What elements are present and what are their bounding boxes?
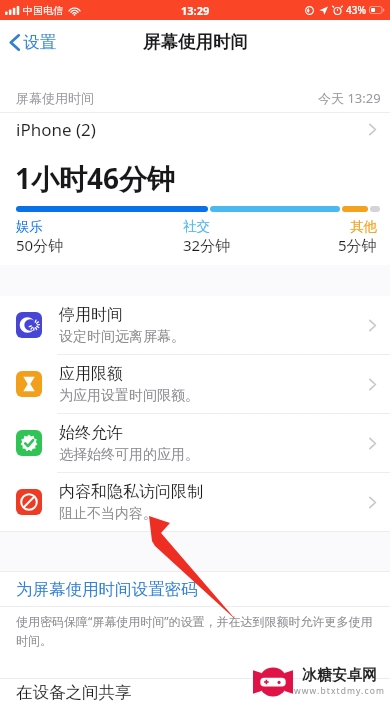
staticText: 内容和隐私访问限制 — [59, 482, 203, 502]
button[interactable]: iPhone (2) — [0, 113, 390, 146]
button[interactable]: 始终允许 — [0, 414, 390, 472]
staticText: 使用密码保障“屏幕使用时间”的设置，并在达到限额时允许更多使用时间。 — [16, 613, 378, 649]
staticText: 设定时间远离屏幕。 — [59, 328, 185, 346]
staticText: 32分钟 — [183, 235, 231, 255]
staticText: 停用时间 — [59, 305, 123, 325]
staticText: 始终允许 — [59, 423, 123, 443]
button[interactable]: 内容和隐私访问限制 — [0, 473, 390, 531]
button[interactable]: 设置 — [0, 24, 68, 61]
staticText: 今天 13:29 — [318, 89, 381, 107]
staticText: 应用限额 — [59, 364, 123, 384]
staticText: 屏幕使用时间 — [143, 31, 248, 53]
staticText: 在设备之间共享 — [16, 682, 132, 703]
staticText: www.btxtdmy.com — [294, 685, 385, 697]
staticText: 13:29 — [181, 3, 210, 18]
staticText: 社交 — [183, 218, 210, 235]
button[interactable]: 为屏幕使用时间设置密码 — [0, 572, 390, 606]
staticText: 选择始终可用的应用。 — [59, 446, 199, 464]
staticText: iPhone (2) — [16, 118, 96, 141]
staticText: 屏幕使用时间 — [16, 90, 94, 106]
staticText: 5分钟 — [338, 235, 377, 255]
staticText: 设置 — [23, 32, 56, 53]
staticText: 43% — [346, 3, 366, 17]
staticText: 50分钟 — [16, 235, 64, 255]
staticText: 为屏幕使用时间设置密码 — [16, 579, 198, 600]
staticText: 娱乐 — [16, 218, 43, 235]
staticText: 冰糖安卓网 — [302, 666, 377, 685]
staticText: 为应用设置时间限额。 — [59, 387, 199, 405]
button[interactable]: 在设备之间共享 — [0, 679, 390, 705]
staticText: 中国电信 — [23, 4, 63, 17]
staticText: 其他 — [350, 218, 377, 235]
button[interactable]: 停用时间 — [0, 296, 390, 354]
staticText: 阻止不当内容。 — [59, 505, 157, 523]
staticText: 1小时46分钟 — [15, 159, 176, 197]
button[interactable]: 应用限额 — [0, 355, 390, 413]
